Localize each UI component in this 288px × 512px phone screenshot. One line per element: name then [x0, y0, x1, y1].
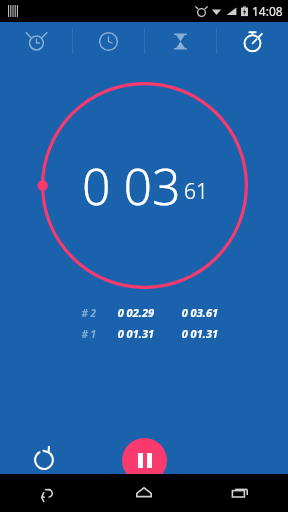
button[interactable]: Back	[0, 474, 96, 512]
staticText: 0 03	[82, 152, 181, 220]
button[interactable]: Reset	[28, 444, 60, 476]
button[interactable]: Alarm	[0, 22, 72, 60]
button[interactable]: Pause	[122, 438, 167, 483]
staticText: # 2	[70, 306, 96, 320]
staticText: 0 02.29	[96, 305, 154, 320]
staticText: 0 01.31	[154, 326, 218, 341]
button[interactable]: Recents	[192, 474, 288, 512]
button[interactable]: Clock	[73, 22, 144, 60]
button[interactable]: Timer	[145, 22, 216, 60]
staticText: # 1	[70, 327, 96, 341]
button[interactable]: Home	[96, 474, 192, 512]
staticText: 61	[184, 177, 208, 206]
staticText: 0 01.31	[96, 326, 154, 341]
staticText: 0 03.61	[154, 305, 218, 320]
staticText: 14:08	[252, 3, 283, 19]
button[interactable]: Stopwatch	[217, 22, 288, 60]
